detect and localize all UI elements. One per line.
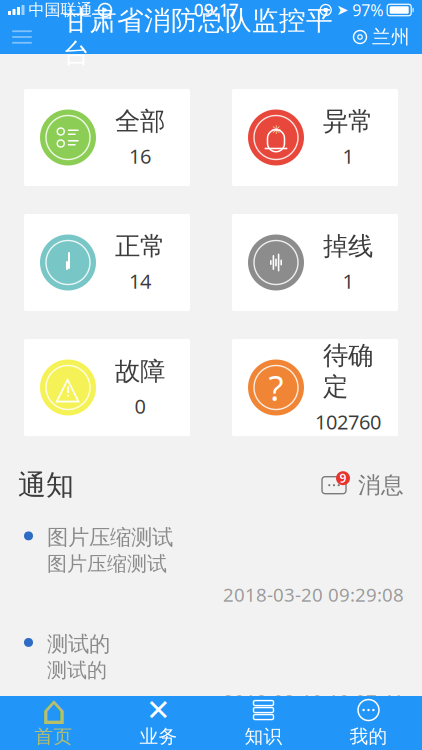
button[interactable]: ?: [232, 339, 398, 436]
button[interactable]: 知识: [211, 696, 316, 750]
button[interactable]: Menu: [0, 20, 44, 54]
staticText: ⌂: [41, 687, 66, 733]
staticText: ?: [268, 364, 283, 410]
staticText: 我的: [349, 725, 387, 748]
staticText: 102760: [315, 408, 381, 435]
staticText: 异常: [323, 106, 373, 137]
staticText: 知识: [244, 725, 282, 748]
staticText: 0: [134, 393, 145, 419]
staticText: 图片压缩测试: [47, 552, 167, 576]
button[interactable]: 9: [318, 471, 404, 499]
staticText: ✳: [271, 123, 281, 136]
staticText: 测试的: [47, 631, 110, 657]
staticText: 1: [342, 143, 353, 169]
staticText: 首页: [34, 725, 72, 748]
button[interactable]: △: [24, 339, 190, 436]
staticText: 1: [342, 268, 353, 294]
staticText: △: [55, 369, 80, 406]
button[interactable]: 正常: [24, 214, 190, 311]
staticText: ✕: [146, 693, 171, 727]
staticText: 9: [339, 470, 346, 486]
button[interactable]: 我的: [316, 696, 421, 750]
staticText: 待确定: [323, 340, 373, 402]
staticText: 2018-03-19 19:07:41: [223, 689, 404, 713]
staticText: 甘肃省消防总队监控平台: [63, 4, 333, 70]
button[interactable]: ✕: [106, 696, 211, 750]
staticText: 14: [129, 268, 151, 294]
button[interactable]: 测试的: [0, 619, 422, 726]
staticText: 通知: [18, 468, 74, 502]
staticText: 16: [129, 143, 151, 169]
staticText: 97%: [352, 0, 383, 21]
staticText: 2018-03-20 09:29:08: [223, 582, 404, 607]
staticText: 测试的: [47, 658, 107, 683]
button[interactable]: 全部: [24, 89, 190, 186]
staticText: 消息: [358, 471, 404, 499]
staticText: 图片压缩测试: [47, 524, 173, 551]
staticText: ➤: [336, 2, 348, 18]
staticText: 正常: [115, 231, 165, 262]
staticText: 掉线: [323, 231, 373, 262]
staticText: 全部: [115, 106, 165, 137]
staticText: 兰州: [372, 25, 410, 48]
staticText: 业务: [139, 725, 177, 748]
button[interactable]: ⌂: [1, 696, 106, 750]
button[interactable]: ✳: [232, 89, 398, 186]
staticText: 故障: [115, 356, 165, 387]
button[interactable]: City 兰州: [352, 20, 422, 54]
staticText: 中国联通: [28, 0, 92, 20]
button[interactable]: 掉线: [232, 214, 398, 311]
button[interactable]: 图片压缩测试: [0, 512, 422, 619]
staticText: 09:17: [194, 0, 239, 21]
